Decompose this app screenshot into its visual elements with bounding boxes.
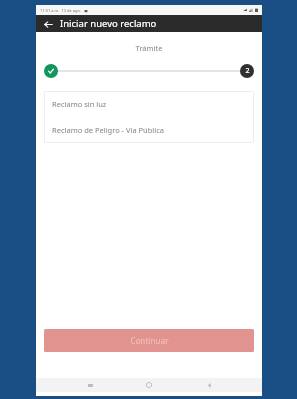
button[interactable]: Paso 1 completado [44, 64, 58, 78]
button[interactable]: Back [41, 17, 55, 31]
button[interactable]: Home [143, 379, 155, 391]
staticText: Iniciar nuevo reclamo [60, 17, 157, 30]
button[interactable]: Recents [84, 379, 96, 391]
button[interactable]: Reclamo sin luz [44, 91, 254, 117]
button[interactable]: Continuar [44, 329, 254, 352]
staticText: Reclamo sin luz [52, 99, 107, 109]
staticText: 11:51 a.m. 13 de ago. [40, 8, 82, 13]
button[interactable]: Paso 2 [240, 64, 254, 78]
staticText: Reclamo de Peligro - Vía Pública [52, 125, 165, 135]
staticText: 2 [245, 66, 250, 76]
button[interactable]: Reclamo de Peligro - Vía Pública [44, 117, 254, 143]
staticText: Continuar [130, 335, 169, 346]
staticText: Trámite [36, 43, 262, 53]
button[interactable]: Back [203, 379, 215, 391]
